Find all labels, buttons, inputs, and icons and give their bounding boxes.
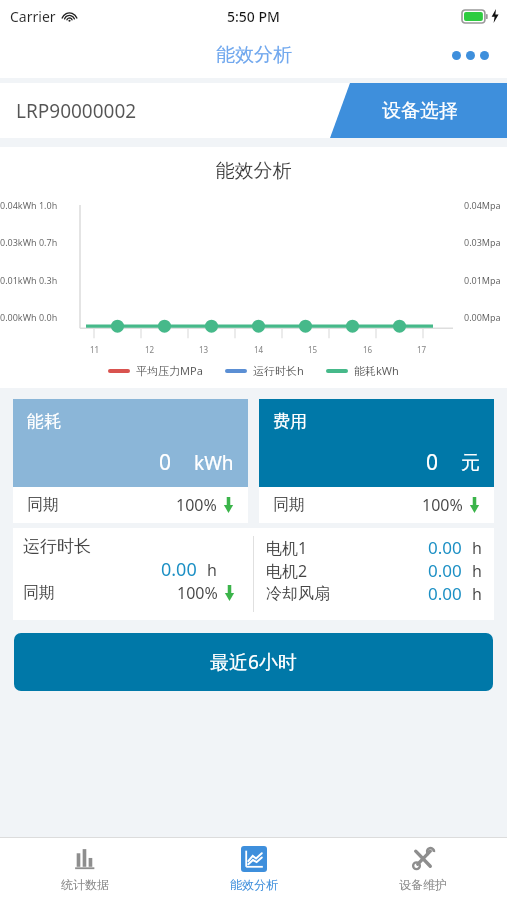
button[interactable]: 能耗	[13, 399, 248, 523]
staticText: LRP90000002	[16, 98, 137, 124]
button[interactable]: More options	[434, 39, 507, 72]
staticText: 0.01kWh 0.3h	[0, 274, 58, 286]
staticText: 能效分析	[0, 159, 507, 183]
staticText: 0.00Mpa	[464, 311, 501, 323]
staticText: 100%	[176, 494, 217, 516]
staticText: 冷却风扇	[266, 584, 330, 604]
staticText: 0.01Mpa	[464, 274, 501, 286]
staticText: 0.03Mpa	[464, 236, 501, 248]
staticText: 12	[145, 344, 155, 355]
staticText: 设备维护	[399, 877, 447, 892]
staticText: 14	[254, 344, 264, 355]
staticText: 15	[308, 344, 318, 355]
staticText: h	[472, 560, 482, 582]
staticText: 电机2	[266, 560, 308, 582]
button[interactable]: 统计数据	[0, 838, 169, 900]
staticText: 能效分析	[216, 43, 292, 67]
staticText: h	[207, 559, 217, 581]
staticText: 0.04kWh 1.0h	[0, 199, 58, 211]
staticText: 100%	[422, 494, 463, 516]
staticText: 同期	[27, 495, 59, 515]
staticText: 运行时长	[23, 536, 91, 557]
staticText: 0.00kWh 0.0h	[0, 311, 58, 323]
staticText: 0.03kWh 0.7h	[0, 236, 58, 248]
staticText: 运行时长h	[253, 363, 304, 378]
staticText: 设备选择	[382, 99, 458, 123]
staticText: h	[472, 537, 482, 559]
staticText: h	[472, 583, 482, 605]
staticText: 0.00	[428, 536, 462, 559]
staticText: 0	[159, 448, 172, 477]
staticText: 最近6小时	[210, 649, 297, 675]
button[interactable]: 能效分析	[169, 838, 338, 900]
staticText: 0.00	[428, 559, 462, 582]
staticText: 17	[417, 344, 427, 355]
staticText: 同期	[23, 583, 55, 603]
staticText: 能效分析	[230, 877, 278, 892]
staticText: 能耗	[27, 411, 61, 432]
staticText: 0.00	[161, 557, 197, 582]
staticText: 平均压力MPa	[136, 363, 203, 378]
staticText: 0.04Mpa	[464, 199, 501, 211]
staticText: 100%	[177, 582, 218, 604]
staticText: 5:50 PM	[227, 7, 280, 26]
staticText: 11	[90, 344, 100, 355]
staticText: 元	[461, 451, 480, 475]
button[interactable]: 费用	[259, 399, 494, 523]
staticText: 13	[199, 344, 209, 355]
staticText: 同期	[273, 495, 305, 515]
staticText: 0.00	[428, 582, 462, 605]
staticText: 电机1	[266, 537, 308, 559]
staticText: kWh	[194, 450, 234, 476]
staticText: 费用	[273, 411, 307, 432]
staticText: 能耗kWh	[354, 363, 399, 378]
staticText: 0	[426, 448, 439, 477]
button[interactable]: 设备维护	[338, 838, 507, 900]
staticText: 统计数据	[61, 877, 109, 892]
staticText: Carrier	[10, 7, 56, 26]
button[interactable]: 最近6小时	[14, 633, 493, 691]
button[interactable]: 设备选择	[312, 83, 507, 138]
staticText: 16	[363, 344, 373, 355]
